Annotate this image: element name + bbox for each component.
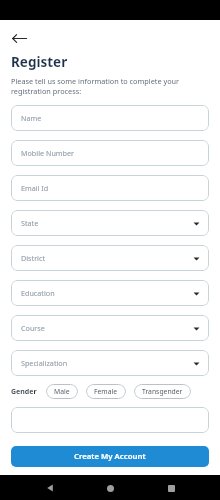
button[interactable]: Transgender: [134, 384, 191, 399]
staticText: Please tell us some information to compl…: [11, 76, 209, 96]
button[interactable]: Specialization: [11, 350, 209, 376]
staticText: Male: [54, 387, 70, 396]
staticText: Register: [11, 53, 68, 71]
button[interactable]: Name: [11, 105, 209, 131]
button[interactable]: State: [11, 210, 209, 236]
button[interactable]: Mobile Number: [11, 140, 209, 166]
button[interactable]: Male: [46, 384, 78, 399]
button[interactable]: Education: [11, 280, 209, 306]
button[interactable]: Email Id: [11, 175, 209, 201]
staticText: Gender: [11, 387, 37, 397]
staticText: Female: [94, 387, 118, 396]
staticText: Name: [21, 113, 200, 123]
staticText: Specialization: [21, 358, 193, 368]
button[interactable]: Create My Account: [11, 446, 209, 467]
staticText: Email Id: [21, 183, 200, 193]
button[interactable]: [11, 407, 209, 433]
staticText: Course: [21, 323, 193, 333]
staticText: Education: [21, 288, 193, 298]
button[interactable]: Recent apps: [160, 477, 182, 499]
staticText: State: [21, 218, 193, 228]
button[interactable]: Home: [99, 477, 121, 499]
button[interactable]: District: [11, 245, 209, 271]
staticText: Transgender: [142, 387, 183, 396]
button[interactable]: Back: [39, 477, 61, 499]
button[interactable]: Back: [11, 31, 31, 45]
button[interactable]: Female: [86, 384, 126, 399]
staticText: District: [21, 253, 193, 263]
staticText: Create My Account: [74, 451, 146, 462]
staticText: Mobile Number: [21, 148, 200, 158]
button[interactable]: Course: [11, 315, 209, 341]
